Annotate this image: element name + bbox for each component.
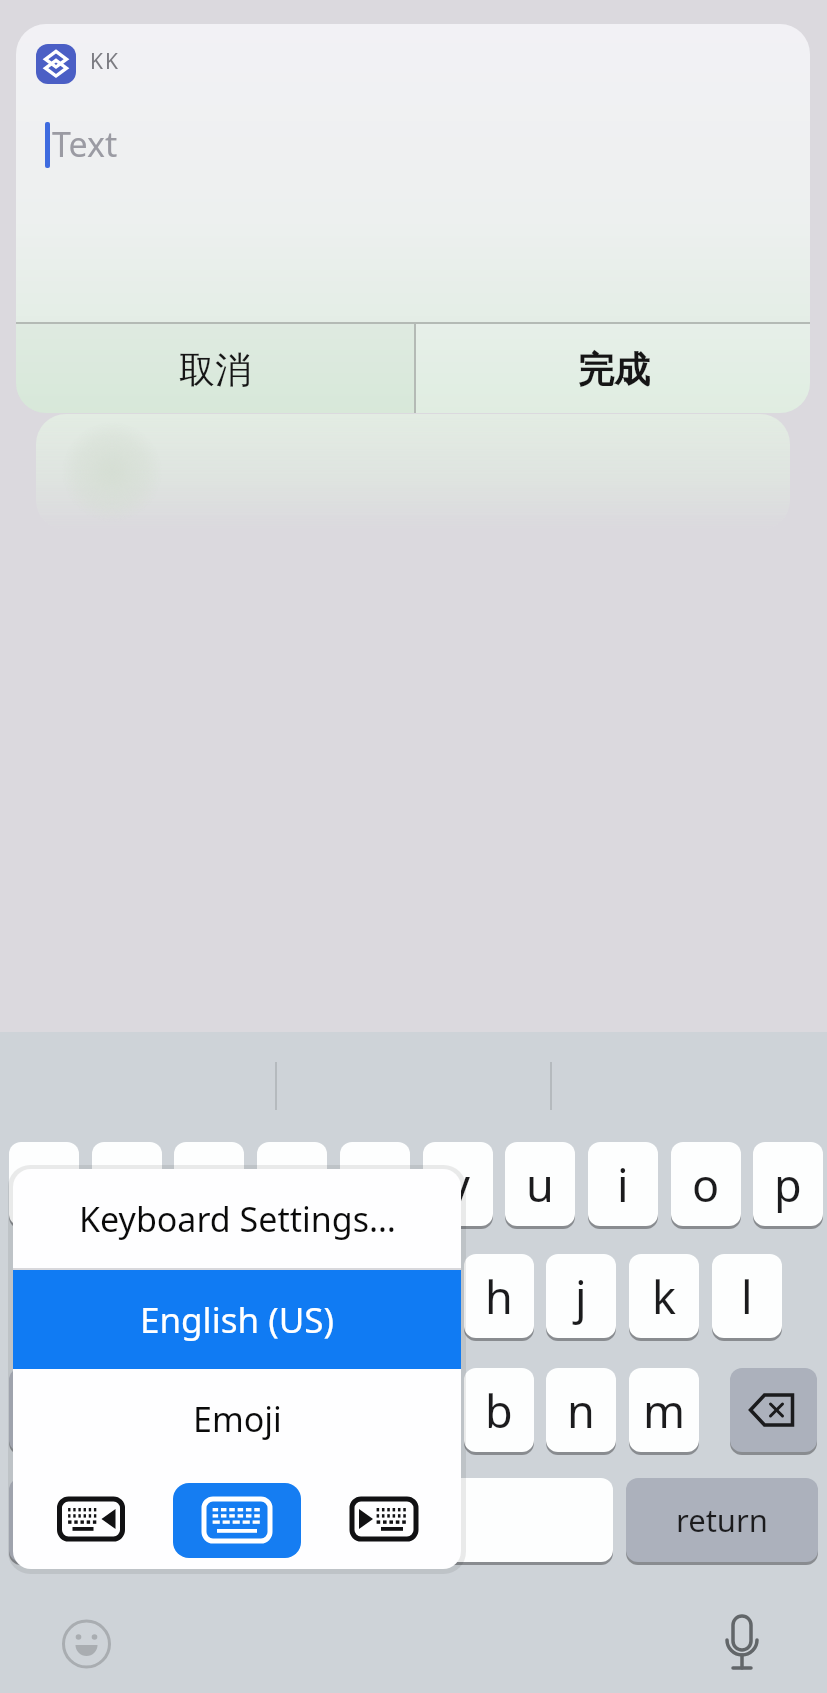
button[interactable]: Keyboard Settings… — [13, 1169, 461, 1268]
button[interactable]: h — [464, 1254, 534, 1338]
button[interactable]: s — [133, 1254, 203, 1338]
staticText: d — [236, 1266, 264, 1327]
staticText: Emoji — [193, 1396, 282, 1442]
staticText: q — [30, 1154, 58, 1215]
staticText: f — [325, 1266, 341, 1327]
button[interactable]: j — [546, 1254, 616, 1338]
staticText: 取消 — [179, 347, 251, 392]
button[interactable]: r — [257, 1142, 327, 1226]
staticText: English (US) — [140, 1296, 334, 1344]
staticText: a — [72, 1266, 98, 1327]
button[interactable]: m — [629, 1368, 699, 1452]
button[interactable]: 取消 — [16, 324, 414, 413]
button[interactable]: 完成 — [416, 324, 810, 413]
staticText: e — [196, 1154, 222, 1215]
staticText: h — [485, 1266, 513, 1327]
staticText: l — [741, 1266, 753, 1327]
staticText: s — [157, 1266, 179, 1327]
button[interactable]: t — [340, 1142, 410, 1226]
button[interactable] — [207, 1478, 613, 1562]
button[interactable]: n — [546, 1368, 616, 1452]
button[interactable] — [173, 1483, 301, 1558]
button[interactable]: y — [423, 1142, 493, 1226]
button[interactable] — [730, 1368, 817, 1452]
button[interactable]: a — [50, 1254, 120, 1338]
button[interactable]: g — [381, 1254, 451, 1338]
staticText: j — [575, 1266, 587, 1327]
staticText: n — [567, 1380, 595, 1441]
button[interactable]: c — [298, 1368, 368, 1452]
button[interactable] — [46, 1485, 164, 1553]
button[interactable]: v — [381, 1368, 451, 1452]
button[interactable] — [310, 1485, 428, 1553]
staticText: x — [238, 1380, 262, 1441]
button[interactable]: z — [133, 1368, 203, 1452]
button[interactable]: e — [174, 1142, 244, 1226]
button[interactable]: o — [671, 1142, 741, 1226]
button[interactable]: English (US) — [13, 1270, 461, 1369]
button[interactable]: Emoji — [13, 1369, 461, 1469]
staticText: w — [109, 1154, 145, 1215]
button[interactable]: l — [712, 1254, 782, 1338]
staticText: k — [652, 1266, 677, 1327]
button[interactable]: k — [629, 1254, 699, 1338]
button[interactable]: b — [464, 1368, 534, 1452]
staticText: y — [447, 1154, 470, 1215]
staticText: return — [676, 1499, 768, 1541]
staticText: m — [643, 1380, 686, 1441]
staticText: o — [692, 1154, 720, 1215]
button[interactable]: d — [215, 1254, 285, 1338]
button[interactable]: w — [92, 1142, 162, 1226]
staticText: u — [526, 1154, 554, 1215]
button[interactable] — [9, 1478, 96, 1562]
staticText: Text — [52, 121, 118, 161]
staticText: i — [617, 1154, 629, 1215]
staticText: p — [774, 1154, 802, 1215]
button[interactable]: x — [215, 1368, 285, 1452]
staticText: KK — [90, 47, 120, 76]
button[interactable] — [105, 1478, 192, 1562]
button[interactable]: f — [298, 1254, 368, 1338]
staticText: b — [485, 1380, 513, 1441]
staticText: t — [367, 1154, 384, 1215]
button[interactable] — [9, 1368, 96, 1452]
button[interactable]: u — [505, 1142, 575, 1226]
button[interactable]: q — [9, 1142, 79, 1226]
button[interactable]: i — [588, 1142, 658, 1226]
staticText: 完成 — [578, 347, 650, 392]
staticText: g — [402, 1266, 430, 1327]
staticText: r — [283, 1154, 302, 1215]
button[interactable]: p — [753, 1142, 823, 1226]
staticText: Keyboard Settings… — [79, 1196, 396, 1242]
button[interactable]: return — [626, 1478, 818, 1562]
